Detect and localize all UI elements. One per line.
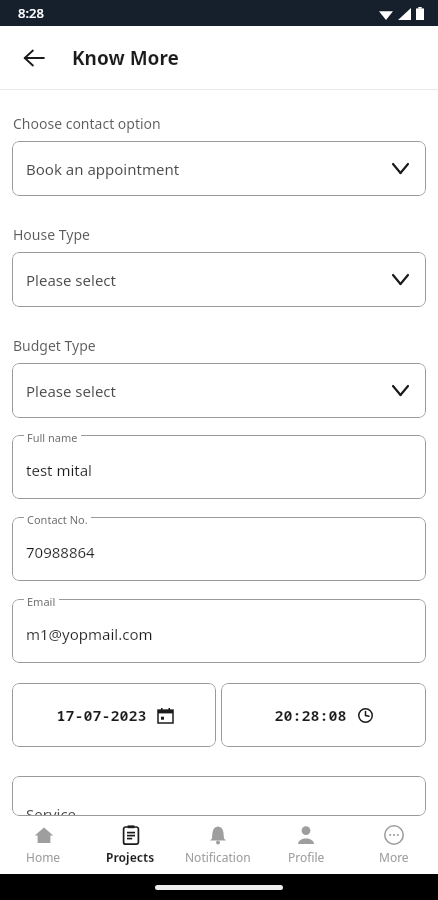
staticText: House Type: [13, 225, 90, 244]
button[interactable]: Profile: [262, 816, 350, 874]
staticText: Book an appointment: [26, 159, 180, 179]
button[interactable]: More: [350, 816, 438, 874]
staticText: More: [379, 849, 409, 865]
staticText: 17-07-2023: [56, 705, 147, 725]
staticText: Choose contact option: [13, 114, 161, 133]
staticText: 70988864: [26, 542, 95, 562]
button[interactable]: Projects: [87, 816, 174, 874]
staticText: Service: [26, 804, 77, 816]
staticText: Full name: [27, 430, 78, 445]
staticText: Home: [26, 849, 61, 865]
staticText: Please select: [26, 381, 116, 401]
button[interactable]: 70988864: [12, 517, 426, 581]
staticText: Contact No.: [27, 512, 88, 527]
button[interactable]: Pick date: [12, 683, 216, 747]
staticText: Know More: [72, 45, 179, 71]
staticText: Notification: [185, 849, 251, 865]
staticText: m1@yopmail.com: [26, 624, 153, 644]
button[interactable]: Book an appointment: [12, 141, 426, 196]
staticText: Projects: [106, 849, 155, 865]
staticText: 8:28: [18, 4, 44, 22]
staticText: Email: [27, 594, 56, 609]
staticText: Profile: [288, 849, 325, 865]
button[interactable]: Notification: [174, 816, 262, 874]
staticText: test mital: [26, 460, 92, 480]
button[interactable]: Service: [12, 776, 426, 816]
staticText: Please select: [26, 270, 116, 290]
button[interactable]: m1@yopmail.com: [12, 599, 426, 663]
button[interactable]: Pick time: [221, 683, 426, 747]
staticText: 20:28:08: [274, 705, 347, 725]
button[interactable]: Please select: [12, 363, 426, 418]
button[interactable]: Home: [0, 816, 87, 874]
button[interactable]: Please select: [12, 252, 426, 307]
button[interactable]: Back: [12, 36, 56, 80]
staticText: Budget Type: [13, 336, 96, 355]
button[interactable]: test mital: [12, 435, 426, 499]
